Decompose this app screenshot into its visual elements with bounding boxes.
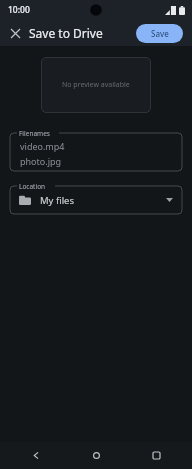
button[interactable]: Back <box>22 442 50 469</box>
button[interactable]: Save <box>136 24 183 43</box>
button[interactable]: Home <box>82 442 110 469</box>
button[interactable]: My files <box>10 186 182 214</box>
staticText: photo.jpg <box>20 155 62 167</box>
staticText: My files <box>40 194 75 207</box>
staticText: Filenames <box>19 129 50 138</box>
staticText: No preview available <box>62 80 130 90</box>
staticText: Save to Drive <box>29 25 103 41</box>
staticText: Save <box>151 28 169 39</box>
staticText: Location <box>19 182 46 191</box>
staticText: video.mp4 <box>20 140 65 152</box>
staticText: 10:00 <box>8 4 30 16</box>
button[interactable]: Recent apps <box>142 442 170 469</box>
button[interactable]: Close <box>3 21 27 45</box>
